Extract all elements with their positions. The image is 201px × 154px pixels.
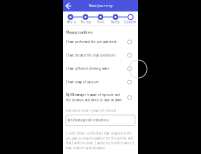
staticText: I have checked the road conditions [66, 54, 115, 57]
button[interactable]: My HSE manager is aware of my route and … [66, 89, 135, 106]
button[interactable]: I have checked the road conditions [66, 49, 135, 62]
staticText: Confirm [124, 20, 135, 24]
button[interactable]: I have a map of my route [66, 75, 135, 89]
staticText: Please confirm: [66, 30, 93, 35]
staticText: Intended route / places of interest [66, 109, 116, 112]
staticText: New Journey [88, 3, 112, 8]
staticText: Specify any special instructions [68, 118, 109, 122]
staticText: My HSE manager is aware of my route and … [66, 93, 121, 102]
staticText: I have performed the pre-start check [66, 40, 116, 44]
staticText: The trip [80, 20, 91, 24]
staticText: Notify [111, 20, 119, 24]
staticText: I have sufficient drinking water [66, 67, 109, 70]
staticText: I have a map of my route [66, 80, 99, 84]
button[interactable]: I have performed the pre-start check [66, 35, 135, 49]
button[interactable]: Back [63, 0, 73, 11]
staticText: Tools [97, 20, 104, 24]
staticText: Who is [67, 20, 76, 24]
staticText: I, John Driver, certify that I have comp… [66, 132, 134, 150]
button[interactable]: I have sufficient drinking water [66, 62, 135, 75]
